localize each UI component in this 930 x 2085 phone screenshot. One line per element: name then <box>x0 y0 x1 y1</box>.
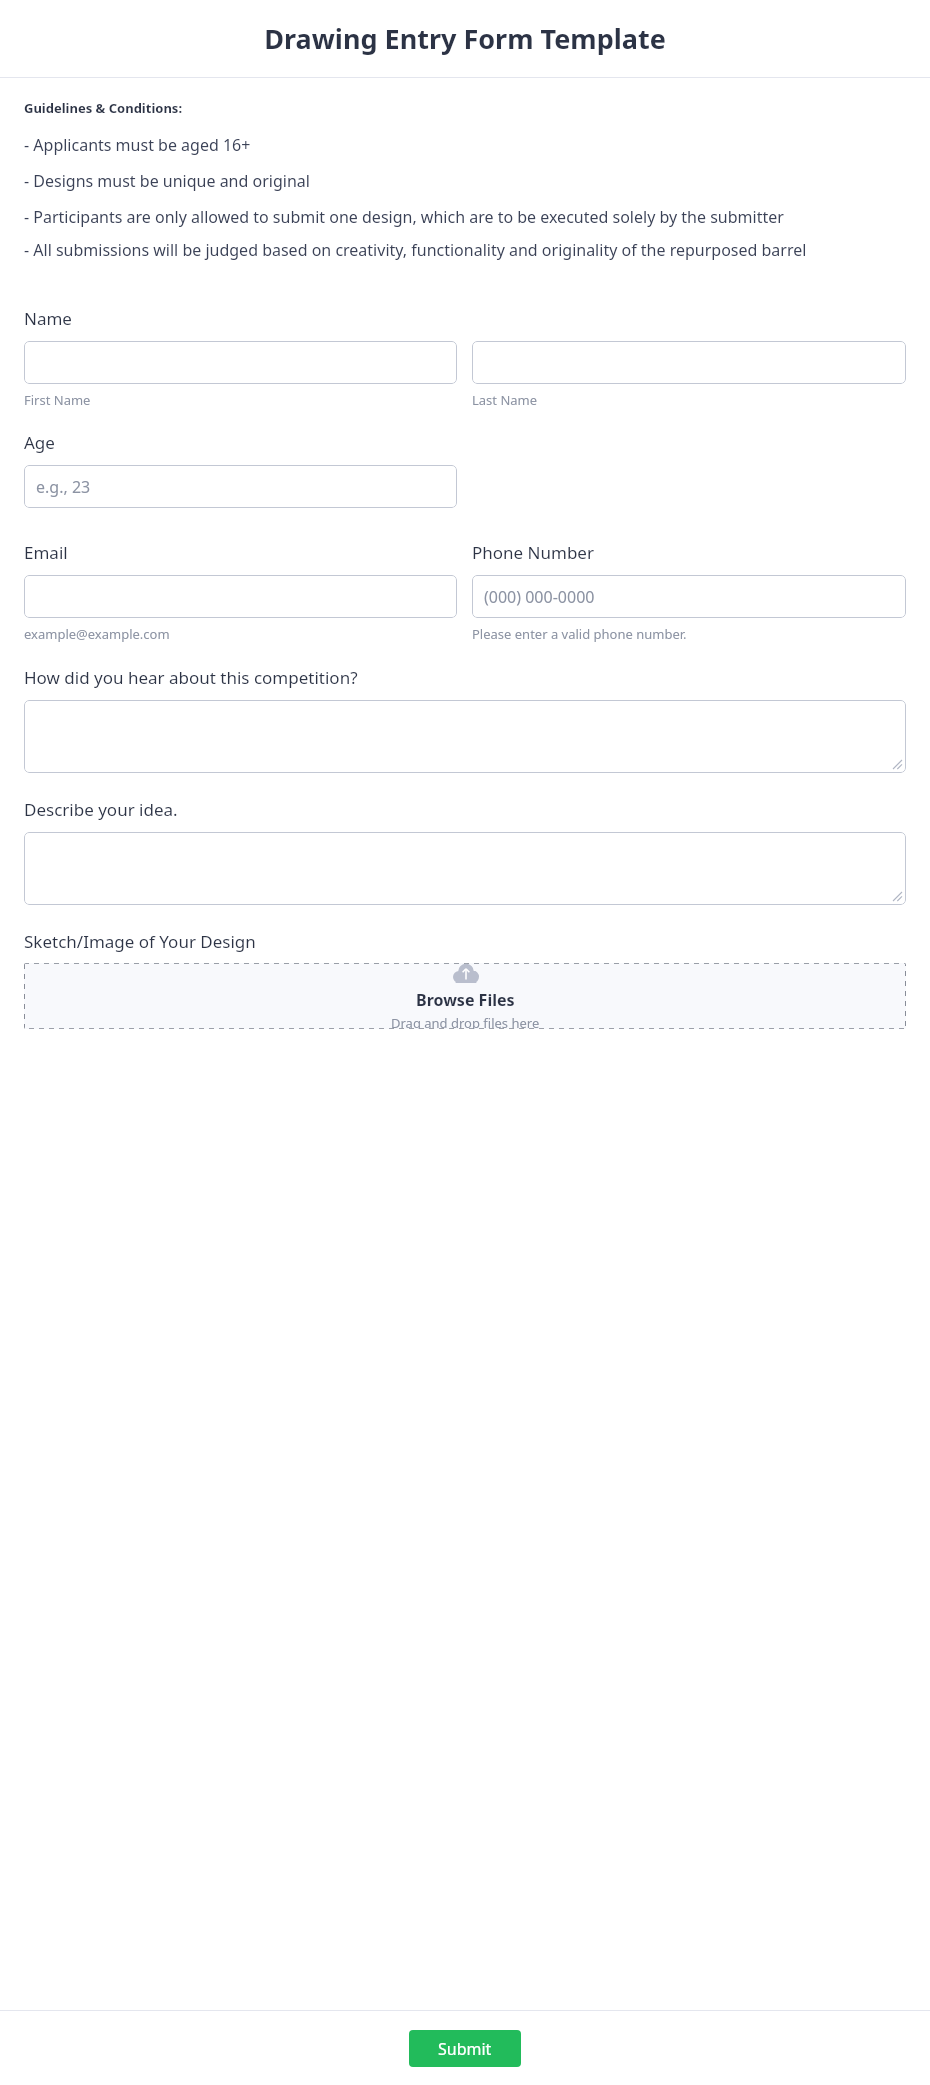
staticText: Guidelines & Conditions: <box>24 99 183 117</box>
button[interactable]: e.g., 23 <box>24 465 457 508</box>
staticText: - Participants are only allowed to submi… <box>24 206 784 228</box>
staticText: Last Name <box>472 391 538 409</box>
button[interactable] <box>24 575 457 618</box>
button[interactable] <box>472 341 906 384</box>
staticText: - Designs must be unique and original <box>24 170 310 192</box>
staticText: Submit <box>438 2038 492 2060</box>
staticText: (000) 000-0000 <box>484 586 595 608</box>
staticText: - Applicants must be aged 16+ <box>24 134 251 156</box>
staticText: Drawing Entry Form Template <box>264 20 666 57</box>
button[interactable]: Browse files to upload <box>24 963 906 1029</box>
staticText: e.g., 23 <box>36 476 91 498</box>
staticText: Email <box>24 541 68 564</box>
staticText: Age <box>24 431 55 454</box>
button[interactable]: (000) 000-0000 <box>472 575 906 618</box>
staticText: How did you hear about this competition? <box>24 666 358 689</box>
staticText: Please enter a valid phone number. <box>472 625 687 643</box>
staticText: Phone Number <box>472 541 594 564</box>
staticText: Sketch/Image of Your Design <box>24 930 256 953</box>
button[interactable] <box>24 832 906 905</box>
staticText: Drag and drop files here <box>391 1014 540 1029</box>
staticText: example@example.com <box>24 625 170 643</box>
staticText: Name <box>24 307 72 330</box>
staticText: Browse Files <box>416 989 515 1011</box>
button[interactable]: Submit <box>409 2030 521 2067</box>
staticText: Describe your idea. <box>24 798 178 821</box>
staticText: First Name <box>24 391 91 409</box>
staticText: - All submissions will be judged based o… <box>24 239 807 261</box>
button[interactable] <box>24 700 906 773</box>
button[interactable] <box>24 341 457 384</box>
